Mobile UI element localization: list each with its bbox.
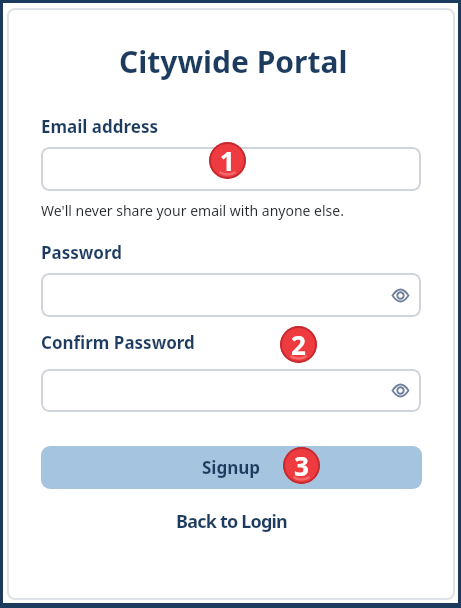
staticText: Signup: [202, 456, 261, 479]
button[interactable]: Signup: [41, 446, 422, 489]
staticText: 3: [294, 448, 309, 483]
button[interactable]: [41, 369, 421, 412]
staticText: 1: [220, 143, 235, 178]
button[interactable]: [41, 273, 421, 317]
staticText: 2: [291, 327, 306, 362]
staticText: We'll never share your email with anyone…: [41, 201, 344, 220]
staticText: Back to Login: [176, 509, 287, 534]
button[interactable]: [41, 147, 421, 191]
staticText: Citywide Portal: [119, 41, 348, 82]
staticText: Password: [41, 241, 122, 264]
staticText: Confirm Password: [41, 331, 195, 354]
staticText: Email address: [41, 115, 158, 138]
button[interactable]: Back to Login: [176, 509, 287, 534]
